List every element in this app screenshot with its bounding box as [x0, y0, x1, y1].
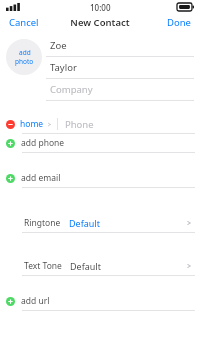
staticText: Default — [70, 260, 101, 272]
other: Add — [6, 297, 15, 306]
button[interactable]: Add photo — [6, 39, 42, 75]
staticText: Phone — [65, 118, 94, 131]
staticText: home — [20, 118, 44, 130]
other: Remove — [6, 120, 15, 129]
button[interactable]: Company — [46, 79, 194, 101]
staticText: Done — [167, 16, 191, 29]
button[interactable]: Add — [0, 169, 200, 188]
button[interactable]: Zoe — [46, 35, 194, 57]
button[interactable]: Text Tone — [0, 257, 200, 276]
other: Add — [6, 139, 15, 148]
button[interactable]: Add — [0, 134, 200, 153]
button[interactable]: Ringtone — [0, 214, 200, 233]
staticText: add email — [21, 172, 61, 184]
button[interactable]: Taylor — [46, 57, 194, 79]
staticText: 10:00 — [90, 2, 111, 13]
staticText: Text Tone — [24, 260, 62, 272]
staticText: Ringtone — [24, 217, 61, 229]
button[interactable]: Remove — [0, 115, 200, 134]
staticText: New Contact — [70, 16, 130, 29]
button[interactable]: Done — [158, 14, 200, 31]
staticText: Taylor — [50, 61, 77, 74]
staticText: Default — [69, 217, 100, 229]
other: Add — [6, 174, 15, 183]
staticText: add url — [21, 295, 50, 307]
staticText: Cancel — [9, 16, 39, 29]
button[interactable]: Add — [0, 292, 200, 311]
button[interactable]: Cancel — [0, 14, 48, 31]
staticText: add — [19, 48, 31, 57]
staticText: photo — [15, 57, 34, 66]
staticText: Company — [50, 83, 93, 96]
staticText: Zoe — [50, 39, 67, 52]
staticText: add phone — [21, 137, 65, 149]
